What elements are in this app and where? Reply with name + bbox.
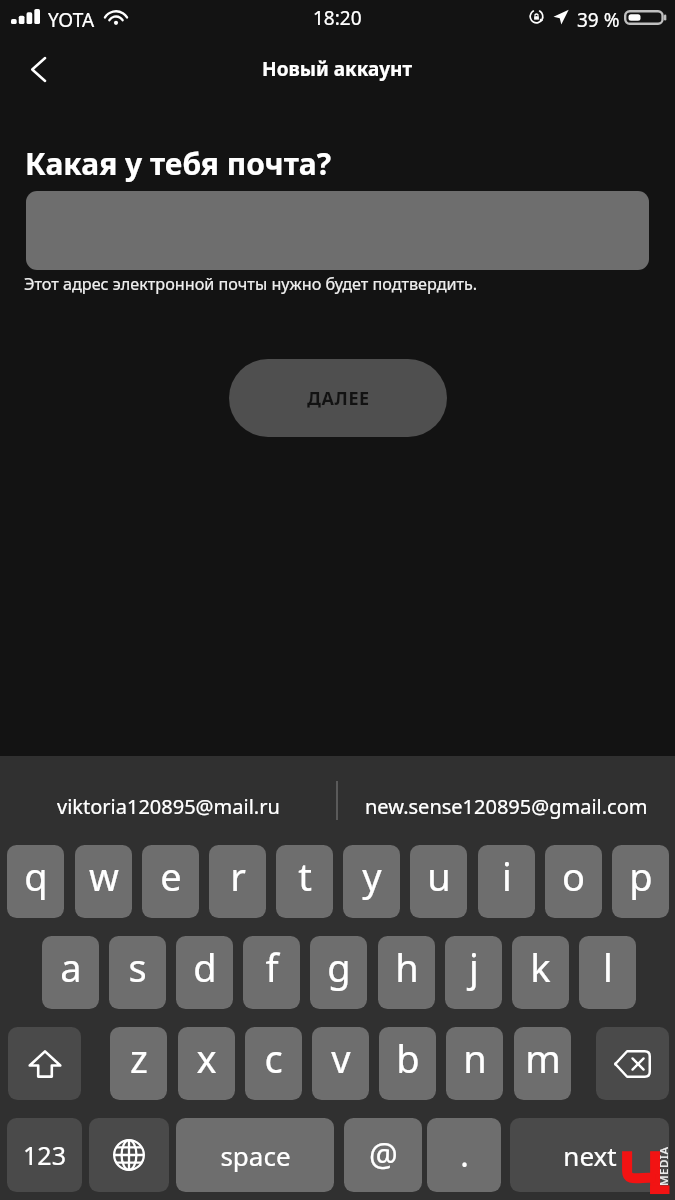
staticText: viktoria120895@mail.ru <box>57 793 280 820</box>
button[interactable]: Backspace <box>596 1027 669 1100</box>
staticText: a <box>60 941 82 993</box>
staticText: MEDIA <box>656 1146 672 1186</box>
button[interactable]: z <box>110 1027 167 1100</box>
staticText: v <box>331 1032 351 1084</box>
staticText: e <box>160 850 182 902</box>
button[interactable]: t <box>276 845 333 918</box>
button[interactable]: q <box>7 845 64 918</box>
button[interactable]: g <box>310 936 367 1009</box>
staticText: d <box>193 941 217 993</box>
button[interactable]: a <box>42 936 99 1009</box>
button[interactable]: b <box>379 1027 436 1100</box>
button[interactable]: i <box>478 845 535 918</box>
button[interactable]: e <box>142 845 199 918</box>
staticText: p <box>629 850 653 902</box>
staticText: f <box>265 941 279 993</box>
button[interactable]: space <box>176 1118 334 1192</box>
button[interactable]: h <box>378 936 435 1009</box>
staticText: h <box>395 941 419 993</box>
staticText: n <box>463 1032 487 1084</box>
staticText: l <box>603 941 613 993</box>
staticText: new.sense120895@gmail.com <box>365 793 648 820</box>
staticText: y <box>362 850 382 902</box>
staticText: next <box>563 1138 617 1173</box>
staticText: z <box>130 1032 148 1084</box>
staticText: r <box>230 850 246 902</box>
button[interactable]: . <box>427 1118 501 1192</box>
button[interactable]: @ <box>344 1118 422 1192</box>
staticText: s <box>128 941 147 993</box>
staticText: m <box>525 1032 561 1084</box>
staticText: q <box>24 850 48 902</box>
staticText: g <box>327 941 351 993</box>
button[interactable]: ДАЛЕЕ <box>229 359 447 437</box>
staticText: @ <box>369 1133 398 1177</box>
button[interactable]: k <box>512 936 569 1009</box>
staticText: o <box>562 850 585 902</box>
button[interactable]: w <box>75 845 132 918</box>
button[interactable]: u <box>410 845 467 918</box>
button[interactable]: x <box>178 1027 235 1100</box>
staticText: b <box>396 1032 420 1084</box>
staticText: Новый аккаунт <box>262 56 413 82</box>
button[interactable]: next <box>510 1118 669 1192</box>
button[interactable]: r <box>209 845 266 918</box>
button[interactable]: new.sense120895@gmail.com <box>338 756 675 856</box>
staticText: Какая у тебя почта? <box>25 143 332 184</box>
staticText: Этот адрес электронной почты нужно будет… <box>24 273 478 295</box>
staticText: 18:20 <box>313 5 362 31</box>
button[interactable]: viktoria120895@mail.ru <box>0 756 336 856</box>
button[interactable]: Shift <box>8 1027 81 1100</box>
staticText: . <box>460 1133 469 1177</box>
button[interactable]: Change language <box>89 1118 169 1192</box>
staticText: i <box>502 850 512 902</box>
button[interactable]: f <box>243 936 300 1009</box>
staticText: x <box>196 1032 217 1084</box>
button[interactable]: y <box>343 845 400 918</box>
button[interactable]: Back <box>14 45 62 93</box>
staticText: space <box>220 1138 291 1173</box>
button[interactable]: Email address input field <box>26 191 649 270</box>
button[interactable]: p <box>612 845 669 918</box>
staticText: c <box>264 1032 283 1084</box>
staticText: j <box>469 941 479 993</box>
button[interactable]: n <box>446 1027 503 1100</box>
button[interactable]: c <box>245 1027 302 1100</box>
button[interactable]: j <box>445 936 502 1009</box>
button[interactable]: m <box>514 1027 571 1100</box>
staticText: w <box>89 850 119 902</box>
button[interactable]: l <box>579 936 636 1009</box>
staticText: 123 <box>23 1138 66 1172</box>
button[interactable]: d <box>176 936 233 1009</box>
button[interactable]: 123 <box>7 1118 82 1192</box>
staticText: YOTA <box>48 7 95 33</box>
staticText: 39 % <box>577 7 620 33</box>
staticText: t <box>298 850 312 902</box>
staticText: u <box>427 850 451 902</box>
button[interactable]: s <box>109 936 166 1009</box>
staticText: ДАЛЕЕ <box>307 386 370 411</box>
button[interactable]: o <box>545 845 602 918</box>
staticText: k <box>530 941 551 993</box>
button[interactable]: v <box>312 1027 369 1100</box>
